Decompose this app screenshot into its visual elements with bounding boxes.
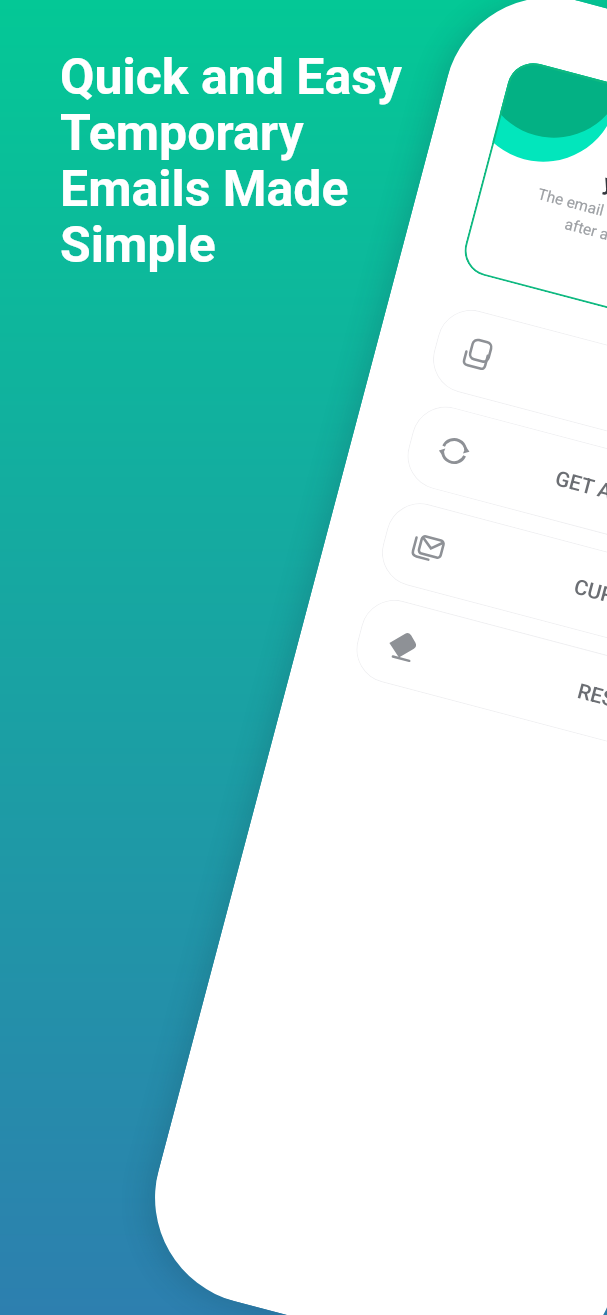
button[interactable]: Mail [374,496,607,675]
button[interactable]: Copy [425,302,607,482]
other: Erase [382,624,424,665]
staticText: CURRENT EMAIL [571,575,607,640]
staticText: your email [600,169,607,223]
staticText: RESET INBOX [575,679,607,736]
other: Refresh [433,430,475,472]
staticText: The email address will be deleted after … [525,185,607,302]
other: Mail [408,527,449,569]
button[interactable]: Refresh [400,399,607,579]
button[interactable]: Erase [349,592,607,772]
staticText: Quick and Easy Temporary Emails Made Sim… [60,48,402,274]
other: Copy [459,334,500,375]
staticText: GET A NEW ADDRESS [552,466,607,543]
